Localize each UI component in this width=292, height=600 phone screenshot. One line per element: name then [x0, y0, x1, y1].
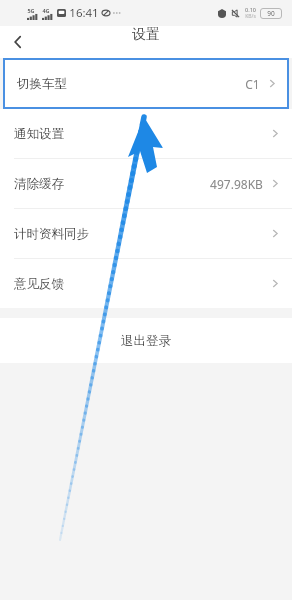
staticText: 16:41	[69, 5, 99, 21]
button[interactable]: 通知设置	[0, 109, 292, 158]
staticText: 退出登录	[121, 333, 171, 349]
button[interactable]: 切换车型	[3, 58, 289, 109]
staticText: 清除缓存	[14, 176, 64, 192]
button[interactable]: 退出登录	[0, 318, 292, 363]
staticText: 90	[267, 9, 275, 18]
staticText: 意见反馈	[14, 276, 64, 292]
staticText: KB/s	[245, 13, 256, 20]
button[interactable]: 意见反馈	[0, 259, 292, 308]
staticText: 497.98KB	[210, 176, 263, 192]
button[interactable]: 计时资料同步	[0, 209, 292, 258]
staticText: 0.10	[245, 6, 256, 13]
staticText: 计时资料同步	[14, 226, 89, 242]
staticText: 设置	[132, 26, 160, 44]
staticText: 5G	[27, 7, 35, 14]
staticText: 通知设置	[14, 126, 64, 142]
staticText: 4G	[42, 7, 50, 14]
staticText: C1	[245, 76, 260, 92]
button[interactable]: 清除缓存	[0, 159, 292, 208]
staticText: 切换车型	[17, 76, 67, 92]
button[interactable]: Back	[0, 26, 36, 58]
